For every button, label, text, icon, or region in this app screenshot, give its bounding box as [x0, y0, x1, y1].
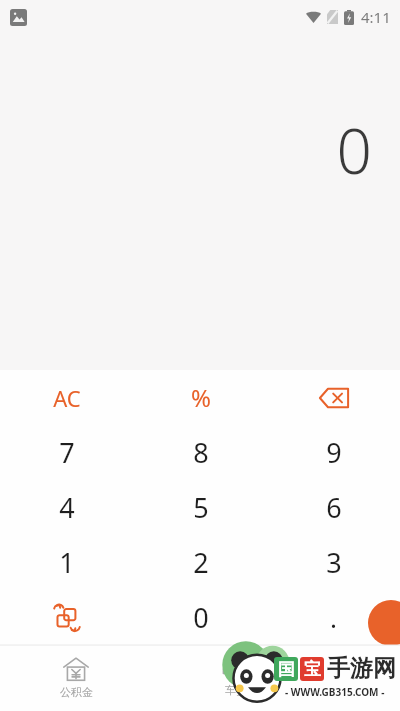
- staticText: 1: [59, 544, 75, 581]
- staticText: 5: [193, 489, 209, 526]
- staticText: 4:11: [361, 7, 391, 27]
- staticText: 6: [326, 489, 342, 526]
- button[interactable]: 3: [267, 535, 400, 590]
- staticText: 9: [326, 434, 342, 471]
- button[interactable]: AC: [0, 370, 134, 425]
- staticText: 0: [193, 599, 209, 636]
- staticText: 4: [59, 489, 75, 526]
- button[interactable]: %: [134, 370, 267, 425]
- staticText: 2: [193, 544, 209, 581]
- button[interactable]: 2: [134, 535, 267, 590]
- button[interactable]: 1: [0, 535, 134, 590]
- button[interactable]: 8: [134, 425, 267, 480]
- staticText: 国: [278, 659, 295, 680]
- staticText: 宝: [304, 659, 321, 680]
- staticText: AC: [53, 383, 81, 413]
- staticText: 7: [59, 434, 75, 471]
- button[interactable]: 6: [267, 480, 400, 535]
- button[interactable]: Convert units: [0, 590, 134, 645]
- button[interactable]: 4: [0, 480, 134, 535]
- staticText: %: [191, 381, 211, 414]
- button[interactable]: 0: [134, 590, 267, 645]
- button[interactable]: 公积金: [0, 645, 152, 711]
- staticText: 8: [193, 434, 209, 471]
- button[interactable]: 5: [134, 480, 267, 535]
- button[interactable]: Backspace: [267, 370, 400, 425]
- button[interactable]: 车贷: [152, 645, 320, 711]
- staticText: 0: [336, 108, 372, 192]
- staticText: 3: [326, 544, 342, 581]
- staticText: 公积金: [60, 685, 93, 699]
- staticText: .: [330, 600, 337, 635]
- staticText: 手游网: [327, 654, 396, 683]
- staticText: 车贷: [225, 683, 247, 697]
- staticText: - WWW.GB315.COM -: [285, 685, 385, 699]
- button[interactable]: Equals: [368, 600, 400, 646]
- button[interactable]: 7: [0, 425, 134, 480]
- button[interactable]: 9: [267, 425, 400, 480]
- button[interactable]: .: [267, 590, 400, 645]
